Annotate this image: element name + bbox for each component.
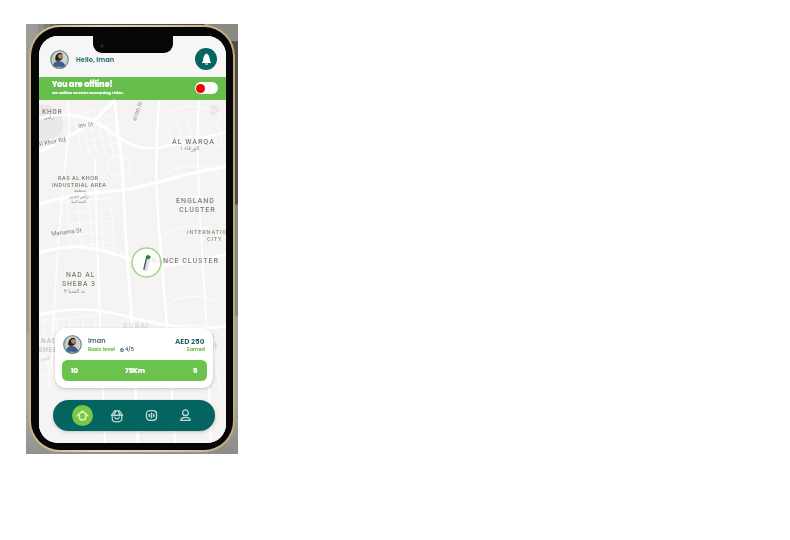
staticText: IE (2) — [198, 341, 218, 348]
staticText: الصناعية — [71, 199, 87, 204]
staticText: SHEB — [39, 346, 59, 354]
staticText: ENGLAND — [176, 196, 215, 204]
staticText: AL WARQA — [172, 137, 215, 145]
staticText: Hello, Iman — [76, 55, 115, 64]
staticText: SHEBA 3 — [62, 280, 96, 288]
staticText: NAD AL — [66, 271, 96, 279]
staticText: FRANCE CLUSTER — [147, 256, 219, 264]
staticText: Manama St — [51, 226, 82, 237]
staticText: CLUSTER — [179, 205, 216, 213]
staticText: RAS AL KHOR — [58, 175, 99, 182]
button[interactable]: Home — [72, 405, 93, 426]
staticText: رأس الخور — [69, 194, 89, 199]
button[interactable]: Notifications — [195, 48, 217, 70]
staticText: INTERNATIONAL — [187, 229, 226, 236]
staticText: الورقاء ١ — [180, 145, 200, 151]
staticText: Iman — [88, 336, 106, 345]
staticText: راس — [44, 114, 54, 120]
staticText: IONA — [197, 332, 215, 339]
staticText: NAD — [41, 337, 58, 345]
staticText: INDUSTRIAL AREA — [52, 182, 107, 189]
staticText: DUBAI — [123, 322, 150, 330]
button[interactable]: Statistics — [141, 405, 162, 426]
staticText: You are offline! — [52, 79, 113, 90]
button[interactable]: Profile — [175, 405, 196, 426]
staticText: لاس — [41, 355, 50, 361]
staticText: KHOR — [42, 108, 63, 116]
button[interactable]: Orders — [106, 405, 127, 426]
staticText: 4/5 — [125, 346, 134, 353]
staticText: Earned — [187, 346, 205, 353]
staticText: Basic level — [88, 346, 115, 353]
staticText: 9th St — [77, 121, 94, 130]
staticText: CITY — [207, 236, 223, 243]
staticText: 5 — [193, 366, 198, 376]
staticText: ند الشبا ٣ — [64, 288, 86, 294]
staticText: Go online to start accepting rides. — [52, 90, 124, 96]
staticText: Al Khor Rd — [39, 135, 66, 148]
staticText: AED 250 — [175, 336, 205, 346]
staticText: منطقة — [74, 188, 86, 193]
staticText: 10 — [71, 366, 78, 376]
button[interactable]: Go online toggle — [195, 82, 218, 94]
staticText: 410th St — [131, 100, 144, 122]
staticText: 75Km — [125, 366, 145, 376]
